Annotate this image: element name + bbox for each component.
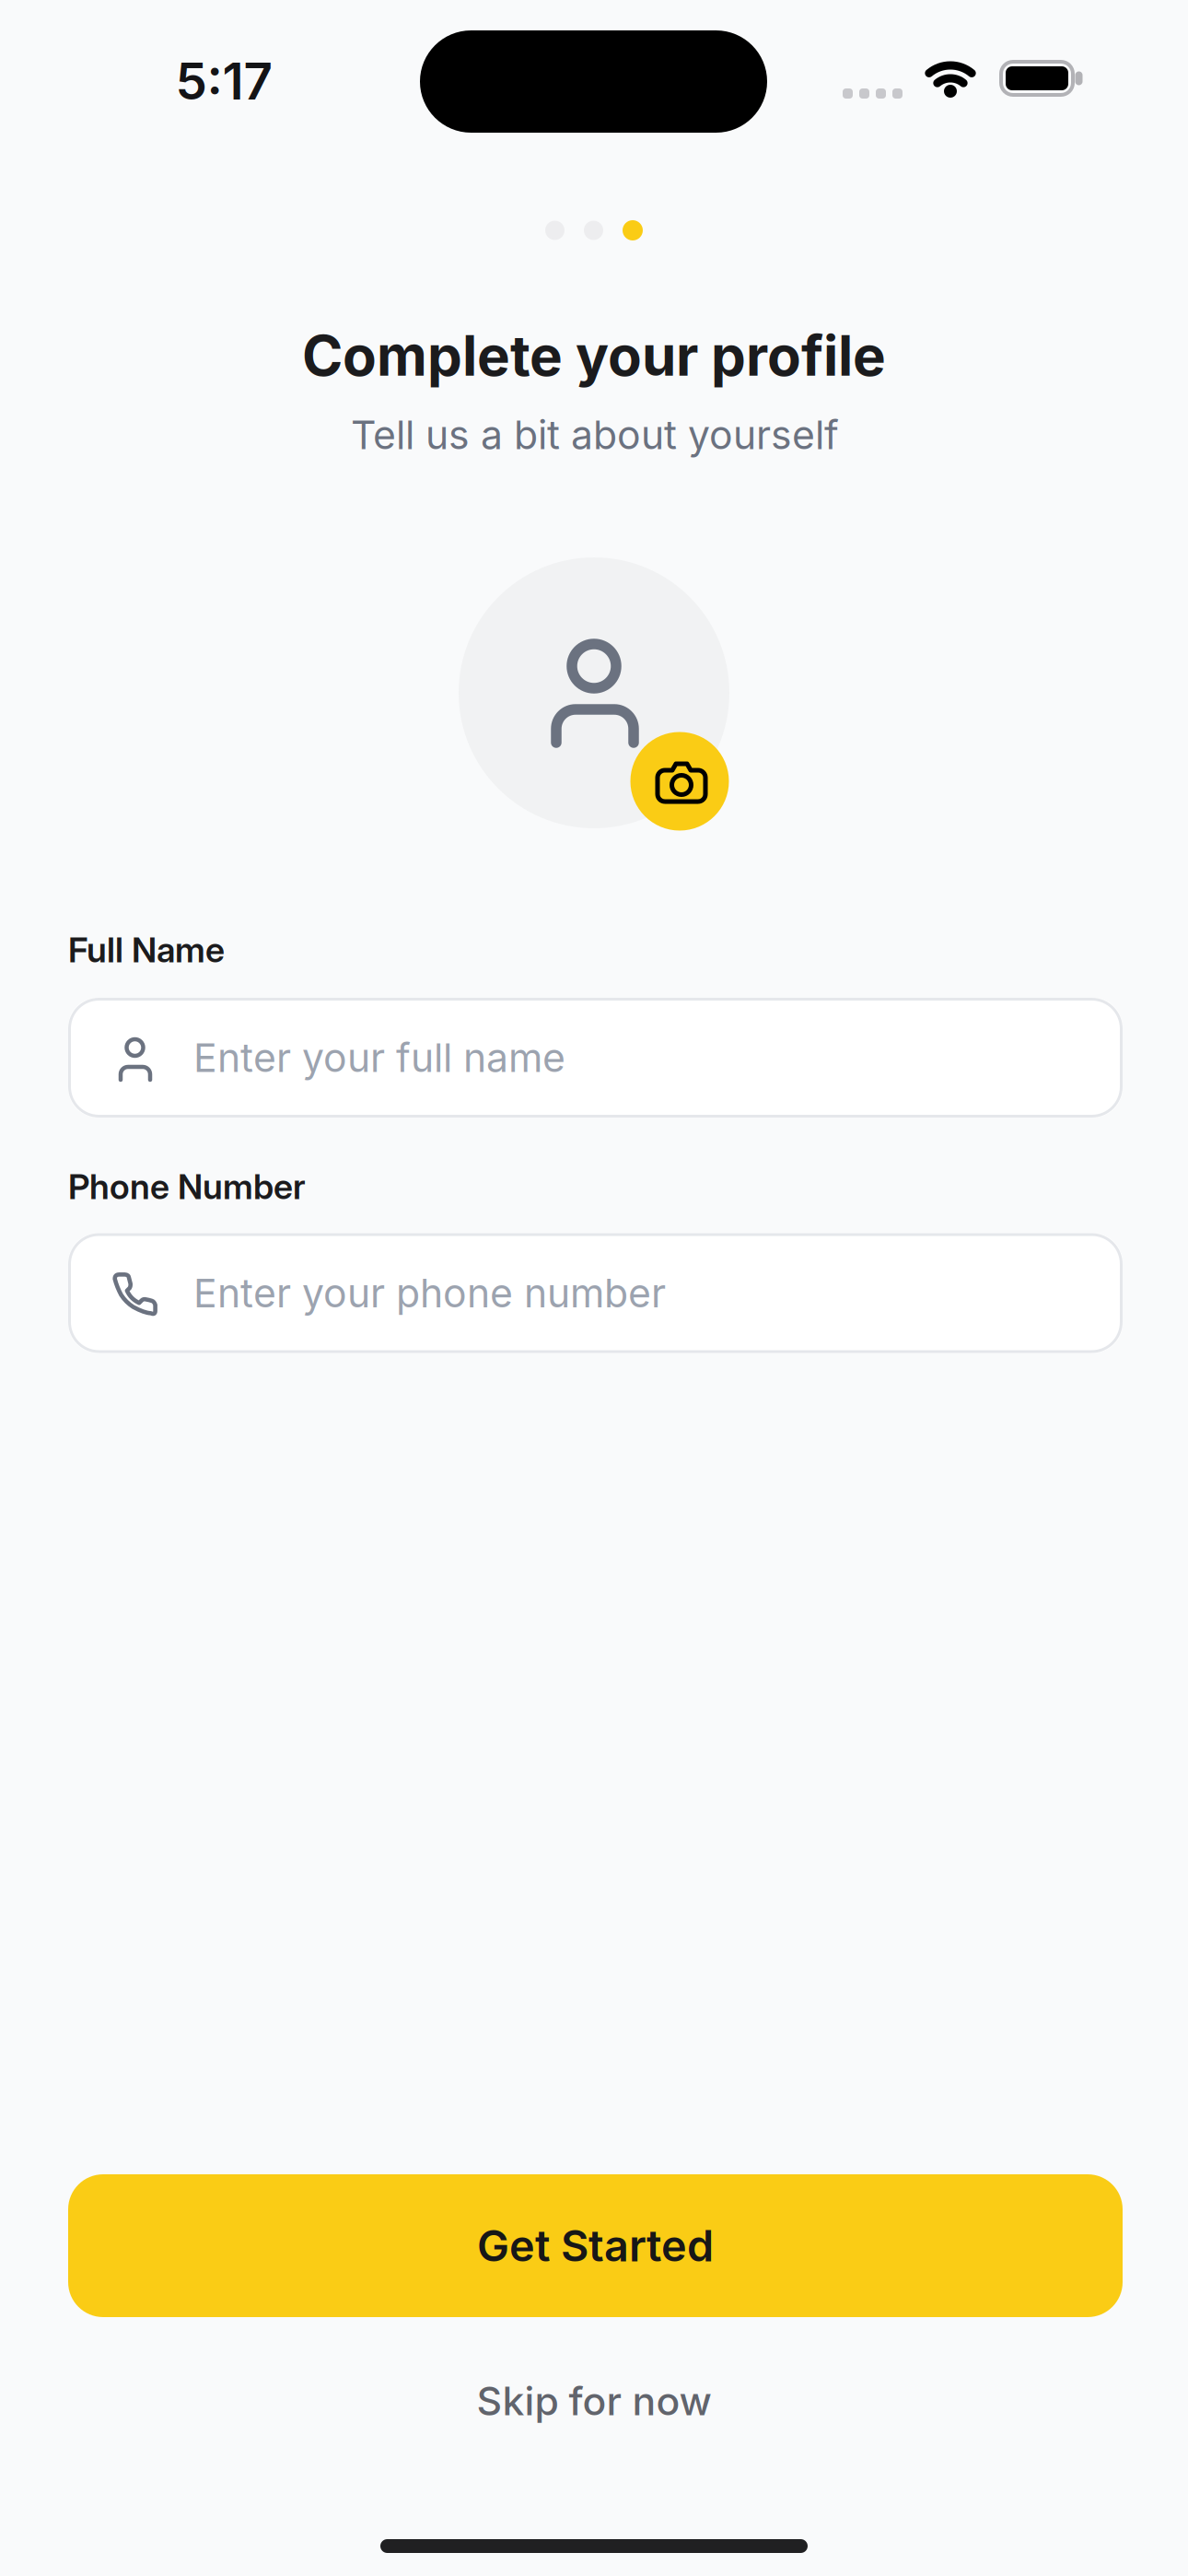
staticText: 5:17 xyxy=(175,51,272,111)
staticText: Get Started xyxy=(477,2220,714,2271)
button[interactable]: Skip for now xyxy=(477,2378,711,2424)
staticText: Tell us a bit about yourself xyxy=(351,412,839,458)
button[interactable]: Enter your phone number xyxy=(68,1233,1123,1353)
staticText: Complete your profile xyxy=(302,323,886,388)
button[interactable]: Get Started xyxy=(68,2174,1123,2317)
staticText: Full Name xyxy=(68,930,225,970)
button[interactable]: Enter your full name xyxy=(68,998,1123,1118)
staticText: Phone Number xyxy=(68,1166,306,1207)
staticText: Enter your phone number xyxy=(193,1270,666,1316)
button[interactable]: Add profile photo xyxy=(447,545,741,840)
staticText: Enter your full name xyxy=(193,1034,565,1081)
staticText: Skip for now xyxy=(477,2378,711,2424)
